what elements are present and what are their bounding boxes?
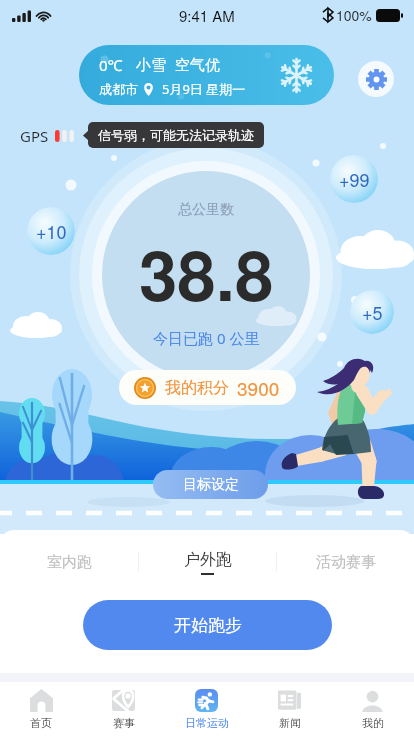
staticText: 开始跑步 xyxy=(174,615,242,636)
button[interactable]: 0℃ xyxy=(79,45,334,105)
staticText: 今日已跑 0 公里 xyxy=(153,328,260,348)
staticText: 空气优 xyxy=(175,56,220,75)
staticText: +99 xyxy=(339,166,370,192)
staticText: 目标设定 xyxy=(183,476,239,494)
button[interactable]: 室内跑 xyxy=(0,540,138,584)
staticText: GPS xyxy=(20,126,49,146)
button[interactable]: 目标设定 xyxy=(153,470,268,499)
staticText: 0℃ xyxy=(99,55,123,75)
button[interactable]: 我的 xyxy=(331,682,414,736)
button[interactable]: 户外跑 xyxy=(139,540,276,584)
staticText: 室内跑 xyxy=(47,553,92,572)
button[interactable]: 开始跑步 xyxy=(83,600,332,650)
staticText: 5月9日 星期一 xyxy=(162,80,246,98)
staticText: 38.8 xyxy=(139,223,274,322)
button[interactable]: Settings xyxy=(358,61,394,97)
button[interactable]: 新闻 xyxy=(248,682,331,736)
staticText: 信号弱，可能无法记录轨迹 xyxy=(98,127,254,143)
staticText: 我的 xyxy=(362,716,384,730)
staticText: 成都市 xyxy=(99,81,138,97)
staticText: 新闻 xyxy=(279,716,301,730)
staticText: +10 xyxy=(36,218,67,244)
staticText: 首页 xyxy=(30,716,52,730)
button[interactable]: 活动赛事 xyxy=(277,540,414,584)
button[interactable]: 我的积分 xyxy=(119,370,296,405)
staticText: 总公里数 xyxy=(178,201,234,219)
button[interactable]: 日常运动 xyxy=(165,682,248,736)
button[interactable]: 赛事 xyxy=(82,682,165,736)
staticText: 赛事 xyxy=(113,716,135,730)
staticText: 活动赛事 xyxy=(316,553,376,572)
staticText: 日常运动 xyxy=(185,716,229,730)
staticText: 9:41 AM xyxy=(179,5,235,26)
staticText: 户外跑 xyxy=(184,550,232,570)
staticText: 小雪 xyxy=(136,56,166,75)
staticText: 3900 xyxy=(237,374,280,401)
staticText: +5 xyxy=(362,299,383,325)
staticText: 我的积分 xyxy=(165,378,229,398)
staticText: 100% xyxy=(336,5,372,25)
button[interactable]: 首页 xyxy=(0,682,82,736)
